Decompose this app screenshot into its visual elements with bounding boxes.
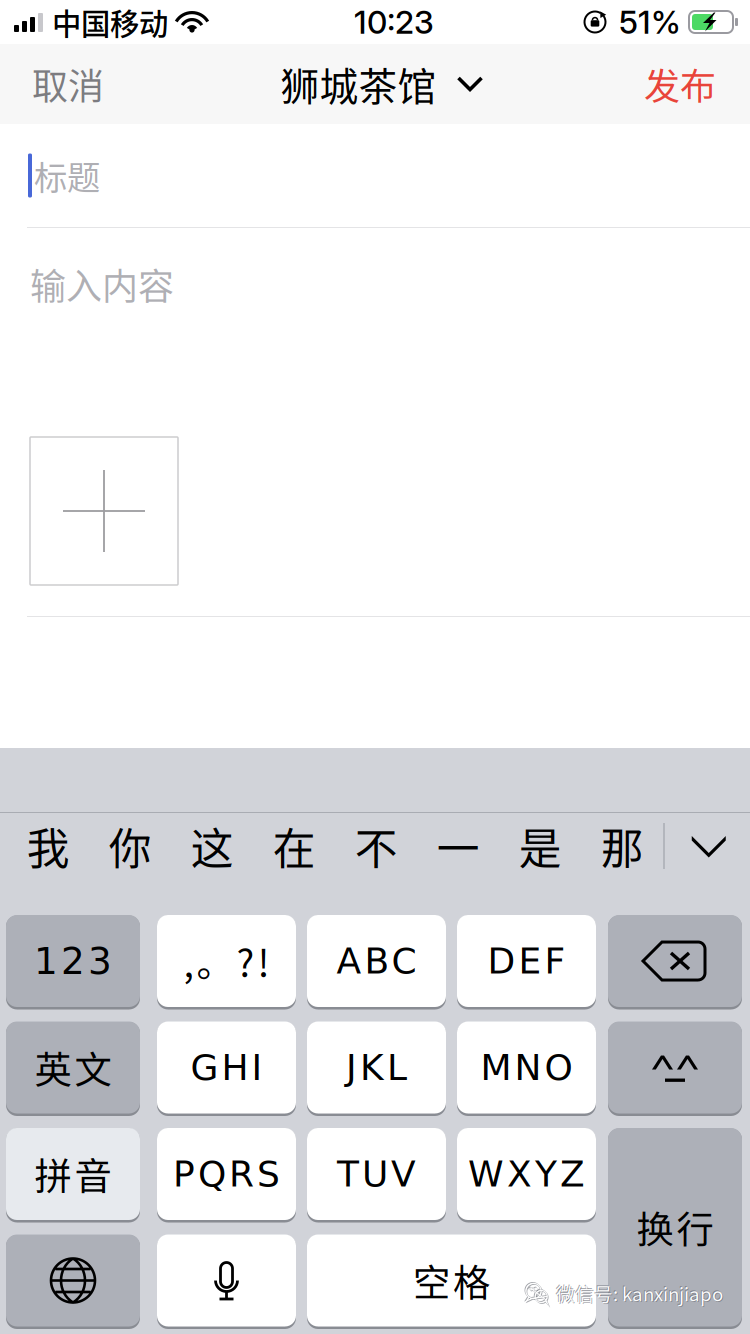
staticText: ABC	[336, 940, 416, 982]
button[interactable]: 不	[335, 813, 417, 879]
button[interactable]: 一	[417, 813, 499, 879]
button[interactable]: DEF	[457, 914, 596, 1009]
staticText: 输入内容	[30, 258, 174, 310]
button[interactable]: 换行	[608, 1127, 742, 1328]
staticText: 换行	[636, 1200, 713, 1254]
button[interactable]: TUV	[307, 1127, 446, 1222]
button[interactable]: 输入内容	[0, 228, 750, 437]
button[interactable]: 拼音	[6, 1127, 140, 1222]
staticText: 这	[191, 815, 234, 877]
staticText: 空格	[413, 1253, 490, 1308]
button[interactable]: ABC	[307, 914, 446, 1009]
staticText: 一	[437, 815, 480, 877]
staticText: JKL	[346, 1046, 407, 1088]
button[interactable]: 取消	[0, 44, 126, 124]
button[interactable]: 发布	[622, 44, 750, 124]
button[interactable]: ,。?!	[157, 914, 296, 1009]
staticText: 微信号: kanxinjiapo	[555, 1279, 722, 1306]
staticText: 发布	[644, 58, 716, 110]
staticText: 取消	[32, 58, 104, 110]
staticText: TUV	[337, 1153, 416, 1195]
staticText: 10:23	[354, 3, 434, 41]
staticText: 那	[601, 815, 644, 877]
button[interactable]: 狮城茶馆	[266, 44, 483, 124]
button[interactable]: 添加图片	[30, 437, 178, 585]
button[interactable]: 那	[581, 813, 663, 879]
staticText: 123	[34, 939, 112, 983]
staticText: 拼音	[34, 1147, 111, 1201]
button[interactable]	[6, 1233, 140, 1328]
button[interactable]	[608, 1020, 742, 1115]
staticText: 是	[519, 815, 562, 877]
staticText: 在	[273, 815, 316, 877]
button[interactable]: 英文	[6, 1020, 140, 1115]
button[interactable]: PQRS	[157, 1127, 296, 1222]
button[interactable]: 在	[253, 813, 335, 879]
button[interactable]: 是	[499, 813, 581, 879]
staticText: PQRS	[173, 1153, 280, 1195]
staticText: 微信号: kanxinjiapo	[557, 1280, 724, 1307]
button[interactable]	[608, 914, 742, 1009]
staticText: 我	[27, 815, 70, 877]
staticText: DEF	[487, 940, 565, 982]
button[interactable]: JKL	[307, 1020, 446, 1115]
button[interactable]: 空格	[307, 1233, 596, 1328]
button[interactable]: 我	[7, 813, 89, 879]
staticText: 英文	[34, 1040, 111, 1095]
staticText: 中国移动	[52, 1, 168, 43]
button[interactable]: 你	[89, 813, 171, 879]
button[interactable]: MNO	[457, 1020, 596, 1115]
staticText: GHI	[190, 1046, 262, 1088]
staticText: 不	[355, 815, 398, 877]
staticText: 微信号: kanxinjiapo	[556, 1279, 723, 1306]
staticText: WXYZ	[468, 1153, 585, 1195]
button[interactable]	[157, 1233, 296, 1328]
staticText: MNO	[480, 1046, 572, 1088]
button[interactable]: 收起键盘	[665, 813, 750, 879]
button[interactable]: GHI	[157, 1020, 296, 1115]
staticText: 狮城茶馆	[280, 56, 436, 112]
button[interactable]: 标题	[0, 124, 750, 227]
button[interactable]: WXYZ	[457, 1127, 596, 1222]
staticText: 51%	[619, 3, 681, 41]
button[interactable]: 这	[171, 813, 253, 879]
button[interactable]: 123	[6, 914, 140, 1009]
staticText: 你	[109, 815, 152, 877]
staticText: 标题	[34, 151, 100, 200]
staticText: ,。?!	[183, 934, 269, 988]
